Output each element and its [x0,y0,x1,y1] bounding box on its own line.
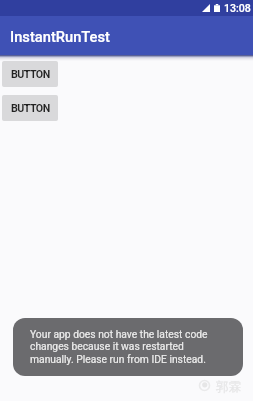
staticText: 郭霖 [216,379,241,395]
button[interactable]: BUTTON [2,61,58,87]
staticText: InstantRunTest [10,28,110,45]
staticText: BUTTON [11,102,50,115]
staticText: 13:08 [224,2,251,14]
other: Signal strength [202,4,210,12]
other: Battery [214,4,220,12]
button[interactable]: InstantRunTest [0,16,253,55]
button[interactable]: BUTTON [2,95,58,121]
staticText: BUTTON [11,68,50,81]
staticText: Your app does not have the latest code c… [30,328,208,366]
